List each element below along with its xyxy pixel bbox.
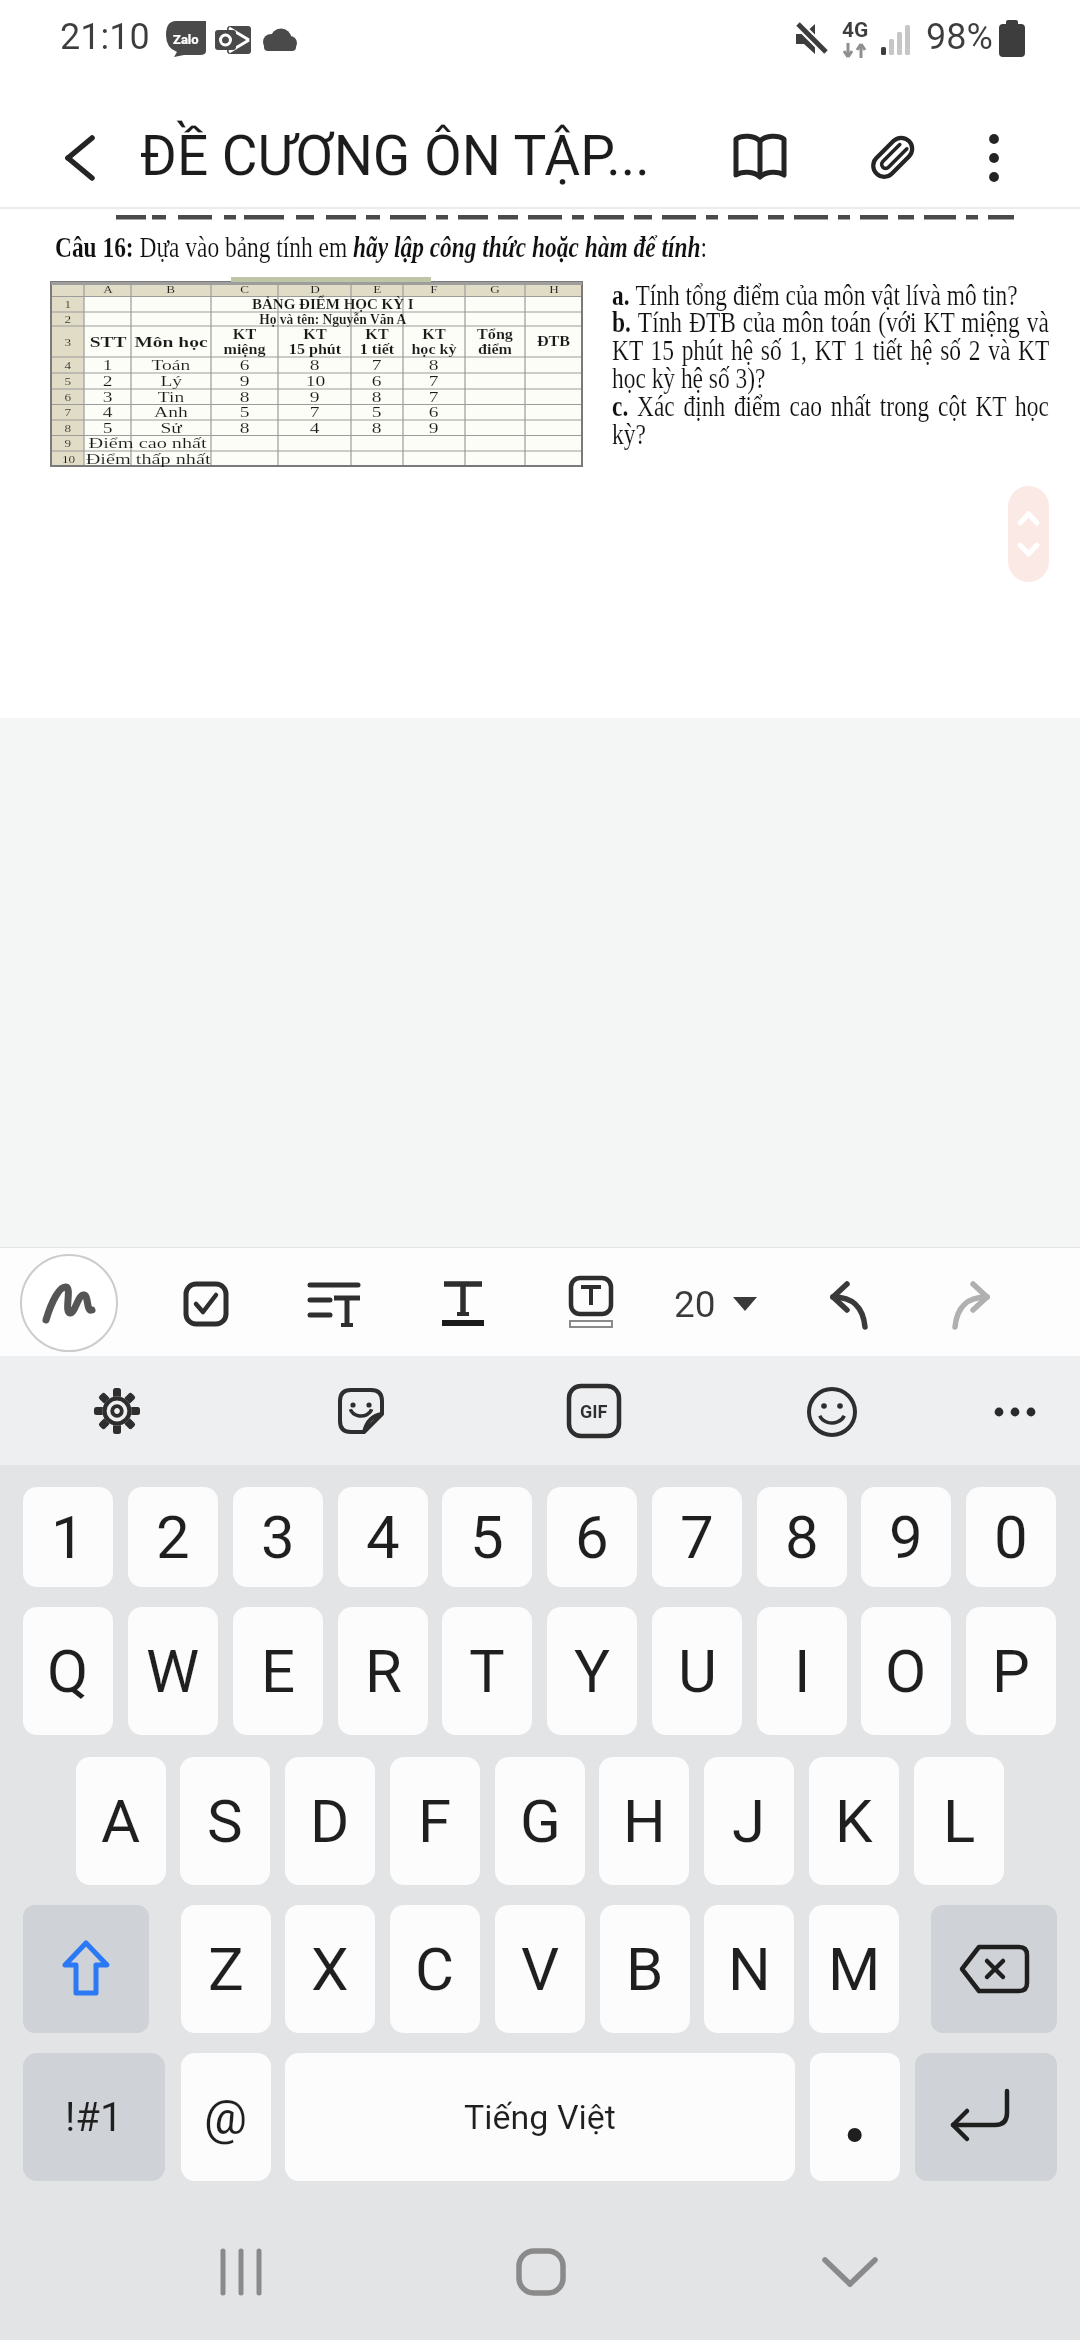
button[interactable] — [952, 112, 1036, 204]
button[interactable] — [931, 1905, 1057, 2033]
button[interactable]: P — [966, 1607, 1056, 1735]
button[interactable] — [796, 1264, 890, 1342]
staticText: 6 — [575, 1502, 609, 1572]
button[interactable] — [810, 2053, 900, 2181]
staticText: H — [549, 283, 559, 295]
staticText: J — [732, 1786, 766, 1856]
button[interactable]: R — [338, 1607, 428, 1735]
button[interactable]: O — [861, 1607, 951, 1735]
button[interactable]: J — [704, 1757, 794, 1885]
button[interactable]: S — [180, 1757, 270, 1885]
button[interactable]: A — [76, 1757, 166, 1885]
button[interactable]: E — [233, 1607, 323, 1735]
staticText: 2 — [103, 373, 113, 390]
button[interactable]: @ — [181, 2053, 271, 2181]
staticText: 10 — [62, 453, 75, 465]
button[interactable]: Tiếng Việt — [285, 2053, 795, 2181]
staticText: 8 — [240, 389, 250, 406]
staticText: 6 — [429, 404, 439, 421]
button[interactable]: G — [495, 1757, 585, 1885]
button[interactable] — [712, 112, 808, 204]
button[interactable] — [20, 1254, 118, 1352]
staticText: 3 — [103, 389, 113, 406]
staticText: 5 — [470, 1502, 504, 1572]
button[interactable]: 2 — [128, 1487, 218, 1587]
staticText: R — [365, 1636, 402, 1706]
button[interactable]: T — [442, 1607, 532, 1735]
button[interactable]: 8 — [757, 1487, 847, 1587]
button[interactable]: 1 — [23, 1487, 113, 1587]
staticText: Họ và tên: Nguyễn Văn A — [259, 311, 407, 328]
staticText: 9 — [64, 437, 72, 449]
button[interactable] — [915, 2053, 1057, 2181]
button[interactable] — [986, 1400, 1044, 1424]
button[interactable]: 5 — [442, 1487, 532, 1587]
button[interactable]: X — [285, 1905, 375, 2033]
staticText: 5 — [240, 404, 250, 421]
button[interactable] — [498, 2232, 584, 2312]
staticText: G — [520, 1786, 561, 1856]
button[interactable] — [196, 2232, 286, 2312]
button[interactable]: I — [757, 1607, 847, 1735]
button[interactable] — [23, 1905, 149, 2033]
button[interactable] — [84, 1378, 150, 1444]
staticText: 20 — [674, 1283, 716, 1326]
staticText: 1 — [51, 1502, 85, 1572]
button[interactable]: N — [704, 1905, 794, 2033]
staticText: Tiếng Việt — [464, 2097, 616, 2137]
button[interactable] — [930, 1264, 1024, 1342]
button[interactable]: Z — [181, 1905, 271, 2033]
button[interactable] — [558, 1266, 624, 1340]
staticText: 98% — [926, 16, 993, 58]
button[interactable]: V — [495, 1905, 585, 2033]
button[interactable]: 20 — [660, 1270, 770, 1338]
button[interactable]: 6 — [547, 1487, 637, 1587]
button[interactable]: 3 — [233, 1487, 323, 1587]
button[interactable] — [1008, 486, 1049, 582]
button[interactable] — [330, 1380, 392, 1442]
staticText: Y — [574, 1636, 611, 1706]
button[interactable]: K — [809, 1757, 899, 1885]
staticText: G — [490, 283, 500, 295]
staticText: 10 — [306, 373, 325, 390]
staticText: 6 — [372, 373, 382, 390]
staticText: Môn học — [134, 334, 208, 351]
button[interactable] — [44, 118, 116, 198]
button[interactable]: 9 — [861, 1487, 951, 1587]
button[interactable]: Q — [23, 1607, 113, 1735]
button[interactable]: M — [809, 1905, 899, 2033]
staticText: T — [469, 1636, 505, 1706]
staticText: 8 — [372, 420, 382, 437]
button[interactable]: 4 — [338, 1487, 428, 1587]
button[interactable] — [430, 1270, 496, 1338]
button[interactable]: F — [390, 1757, 480, 1885]
staticText: K — [835, 1786, 873, 1856]
button[interactable] — [172, 1270, 240, 1338]
staticText: D — [310, 1786, 350, 1856]
button[interactable]: L — [914, 1757, 1004, 1885]
button[interactable]: Y — [547, 1607, 637, 1735]
button[interactable]: GIF — [568, 1382, 620, 1440]
button[interactable]: B — [600, 1905, 690, 2033]
staticText: KT học kỳ — [411, 327, 457, 357]
button[interactable]: 0 — [966, 1487, 1056, 1587]
button[interactable] — [846, 112, 938, 204]
staticText: F — [418, 1786, 452, 1856]
button[interactable]: C — [390, 1905, 480, 2033]
button[interactable]: D — [285, 1757, 375, 1885]
staticText: Điểm thấp nhất — [86, 451, 211, 468]
button[interactable]: H — [599, 1757, 689, 1885]
staticText: BẢNG ĐIỂM HỌC KỲ I — [252, 296, 414, 313]
staticText: O — [885, 1636, 927, 1706]
staticText: Câu 16: Dựa vào bảng tính em hãy lập côn… — [55, 230, 707, 263]
button[interactable] — [296, 1270, 372, 1338]
staticText: 5 — [64, 375, 72, 387]
button[interactable]: !#1 — [23, 2053, 165, 2181]
button[interactable]: W — [128, 1607, 218, 1735]
button[interactable]: 7 — [652, 1487, 742, 1587]
button[interactable] — [806, 2232, 894, 2312]
staticText: KT 1 tiết — [360, 327, 394, 357]
button[interactable]: U — [652, 1607, 742, 1735]
button[interactable] — [806, 1386, 858, 1438]
staticText: 7 — [372, 357, 382, 374]
